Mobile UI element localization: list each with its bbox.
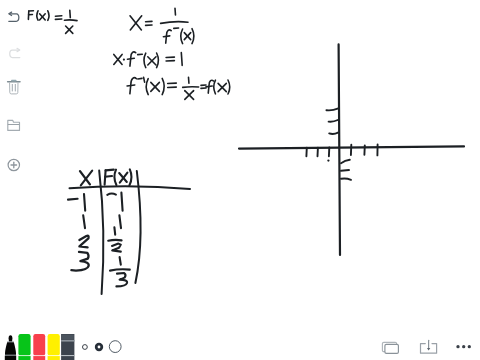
button[interactable]: Eraser xyxy=(60,332,75,360)
button[interactable]: Save xyxy=(419,335,441,357)
button[interactable]: Open folder xyxy=(3,114,25,136)
button[interactable]: New page xyxy=(3,154,25,176)
button[interactable]: Undo xyxy=(3,6,25,28)
button[interactable]: Thick stroke xyxy=(107,338,125,356)
button[interactable]: Redo xyxy=(3,42,25,64)
button[interactable]: Yellow pen xyxy=(45,334,59,360)
button[interactable]: Delete xyxy=(3,77,25,99)
button[interactable]: Red pen xyxy=(31,334,45,360)
button[interactable]: Medium stroke xyxy=(92,339,108,355)
button[interactable]: Green pen xyxy=(17,334,31,360)
button[interactable]: More options xyxy=(448,336,478,356)
button[interactable]: Duplicate page xyxy=(381,336,401,356)
button[interactable]: Black pen xyxy=(3,334,17,360)
button[interactable]: Thin stroke xyxy=(78,339,94,355)
